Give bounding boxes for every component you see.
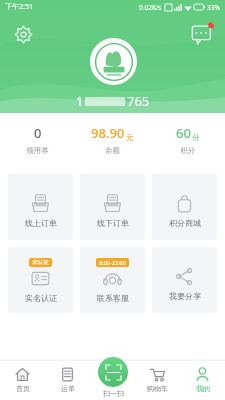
button[interactable]: 我要分享 bbox=[152, 247, 217, 313]
button[interactable]: 未认证 bbox=[8, 247, 73, 313]
staticText: 1 bbox=[76, 92, 84, 110]
staticText: 分 bbox=[192, 133, 200, 142]
staticText: 扫一扫 bbox=[103, 389, 124, 398]
staticText: 购物车 bbox=[147, 384, 168, 393]
staticText: 下午2:51 bbox=[5, 2, 33, 12]
button[interactable]: 8:00-22:00 bbox=[80, 247, 145, 313]
button[interactable]: Scan bbox=[98, 357, 128, 398]
staticText: 我要分享 bbox=[169, 291, 201, 301]
staticText: 余额 bbox=[105, 146, 120, 155]
button[interactable]: 购物车 bbox=[135, 360, 180, 400]
button[interactable]: 线上订单 bbox=[8, 174, 73, 240]
staticText: 领用券 bbox=[26, 146, 49, 155]
button[interactable]: Messages bbox=[187, 19, 217, 49]
staticText: 实名认证 bbox=[25, 293, 57, 303]
button[interactable]: 运单 bbox=[45, 360, 90, 400]
staticText: 运单 bbox=[61, 384, 75, 393]
staticText: 765 bbox=[127, 92, 150, 110]
staticText: 0 bbox=[34, 124, 42, 142]
button[interactable]: 我的 bbox=[180, 360, 225, 400]
button[interactable]: 98.90 bbox=[75, 113, 150, 165]
staticText: 0.02K/s bbox=[139, 3, 162, 12]
button[interactable]: 线下订单 bbox=[80, 174, 145, 240]
staticText: 60 bbox=[176, 124, 191, 142]
button[interactable]: Avatar bbox=[90, 38, 137, 85]
staticText: 首页 bbox=[16, 384, 30, 393]
staticText: 33% bbox=[207, 3, 220, 12]
staticText: 8:00-22:00 bbox=[99, 259, 126, 266]
button[interactable]: 0 bbox=[0, 113, 75, 165]
staticText: 联系客服 bbox=[97, 293, 129, 303]
button[interactable]: 60 bbox=[150, 113, 225, 165]
button[interactable]: 积分商城 bbox=[152, 174, 217, 240]
staticText: 线下订单 bbox=[97, 218, 129, 228]
staticText: 积分商城 bbox=[169, 218, 201, 228]
staticText: 98.90 bbox=[91, 124, 125, 142]
button[interactable]: Settings bbox=[9, 20, 37, 48]
staticText: 元 bbox=[126, 133, 134, 142]
button[interactable]: 首页 bbox=[0, 360, 45, 400]
staticText: 我的 bbox=[196, 384, 210, 393]
staticText: 未认证 bbox=[32, 259, 49, 266]
staticText: 积分 bbox=[180, 146, 195, 155]
staticText: 线上订单 bbox=[25, 218, 57, 228]
